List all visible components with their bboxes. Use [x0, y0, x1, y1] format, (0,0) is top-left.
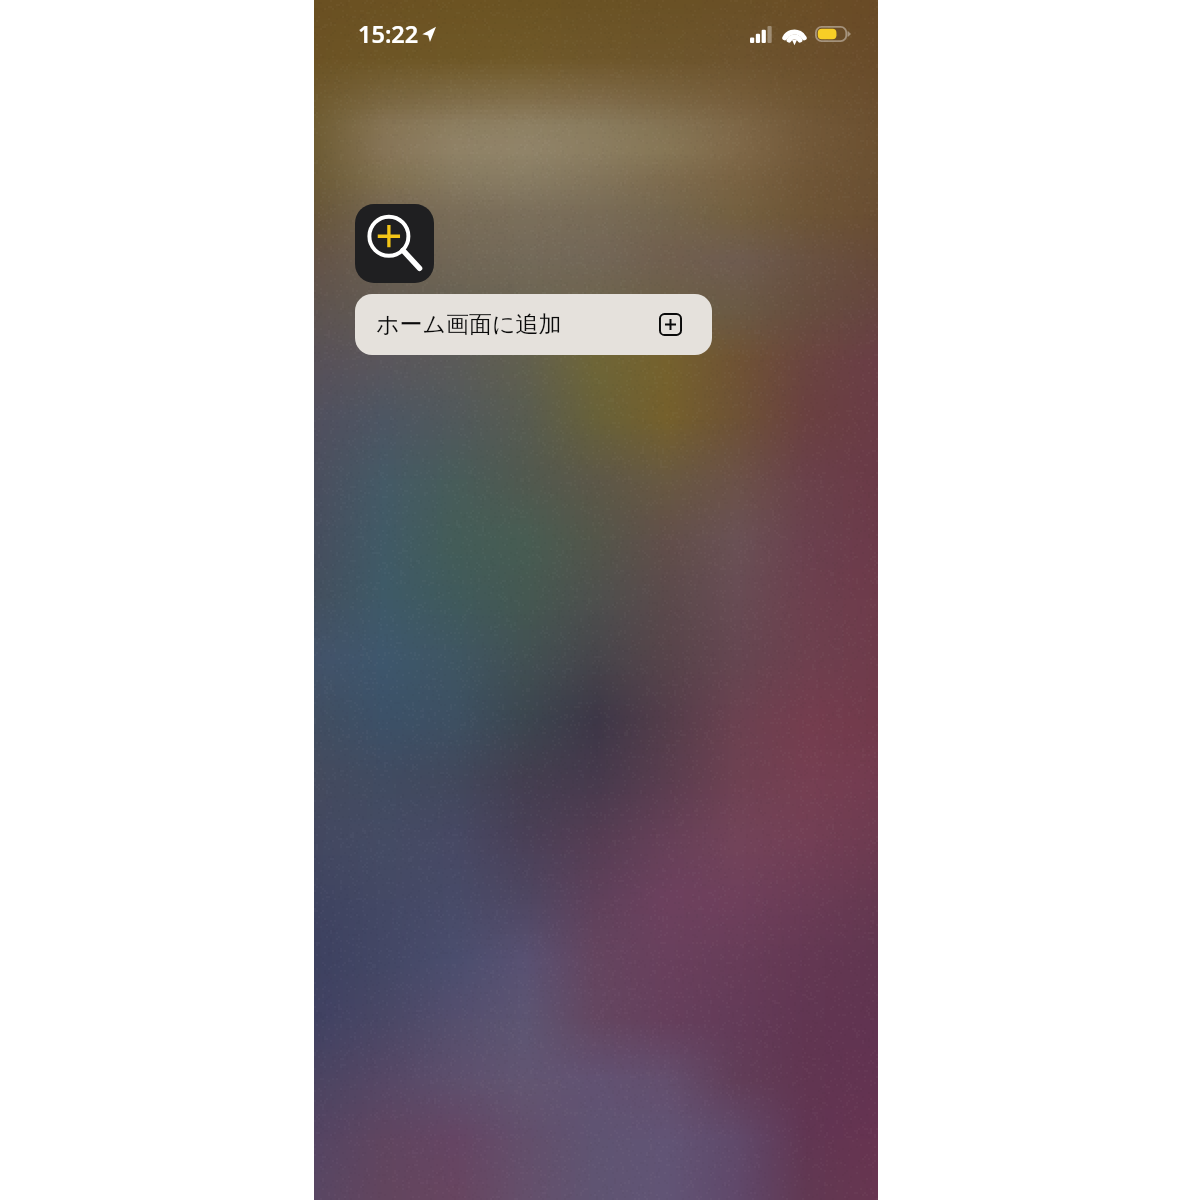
staticText: 15:22 [358, 18, 419, 50]
button[interactable]: ホーム画面に追加 [355, 294, 712, 355]
staticText: ホーム画面に追加 [376, 310, 562, 339]
button[interactable]: Magnifier app icon [355, 204, 434, 283]
other: Cellular signal three bars [750, 26, 773, 43]
other: Location services active [422, 26, 436, 42]
other: Battery in Low Power Mode [815, 26, 851, 42]
other: Wi-Fi connected [782, 25, 807, 43]
